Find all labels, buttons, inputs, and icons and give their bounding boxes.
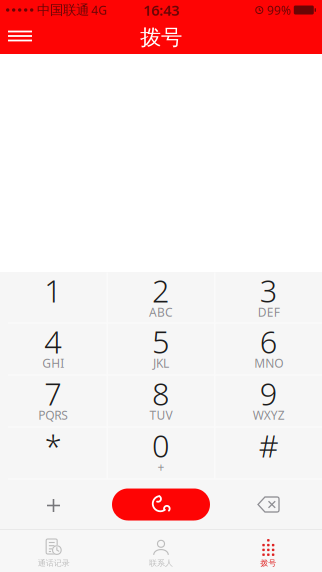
staticText: PQRS <box>38 407 68 423</box>
staticText: JKL <box>153 355 169 371</box>
button[interactable]: 0 <box>108 427 214 478</box>
button[interactable]: 拨号 <box>215 529 322 572</box>
staticText: 联系人 <box>149 558 173 568</box>
button[interactable]: 8 <box>108 375 214 426</box>
button[interactable]: 1 <box>0 272 107 322</box>
button[interactable]: 联系人 <box>107 529 215 572</box>
staticText: 16:43 <box>143 0 179 20</box>
staticText: 9 <box>260 373 278 414</box>
button[interactable]: 2 <box>108 272 214 322</box>
staticText: + <box>157 459 164 475</box>
button[interactable]: 通话记录 <box>0 529 107 572</box>
staticText: 0 <box>152 425 170 466</box>
button[interactable]: Delete <box>215 480 322 529</box>
staticText: 6 <box>260 321 278 362</box>
staticText: 4 <box>44 321 62 362</box>
button[interactable]: Add pause <box>0 480 107 529</box>
button[interactable]: # <box>215 427 322 478</box>
button[interactable]: 7 <box>0 375 107 426</box>
staticText: 4G <box>91 2 107 18</box>
staticText: 5 <box>152 321 170 362</box>
button[interactable]: 4 <box>0 323 107 374</box>
staticText: 1 <box>44 270 62 311</box>
button[interactable]: Call <box>107 480 215 529</box>
button[interactable]: 6 <box>215 323 322 374</box>
staticText: 中国联通 <box>37 2 89 18</box>
staticText: TUV <box>149 407 172 423</box>
staticText: 7 <box>44 373 62 414</box>
staticText: ABC <box>149 304 173 320</box>
staticText: 8 <box>152 373 170 414</box>
staticText: 拨号 <box>140 24 182 51</box>
staticText: 2 <box>152 270 170 311</box>
staticText: DEF <box>258 304 280 320</box>
staticText: 3 <box>260 270 278 311</box>
staticText: WXYZ <box>253 407 285 423</box>
staticText: MNO <box>254 355 283 371</box>
button[interactable]: 5 <box>108 323 214 374</box>
staticText: 99% <box>267 2 291 18</box>
button[interactable]: Menu <box>0 19 40 55</box>
staticText: * <box>45 425 62 466</box>
button[interactable]: 3 <box>215 272 322 322</box>
staticText: 通话记录 <box>38 558 70 568</box>
button[interactable]: 9 <box>215 375 322 426</box>
staticText: # <box>259 425 279 466</box>
staticText: GHI <box>42 355 64 371</box>
button[interactable]: * <box>0 427 107 478</box>
staticText: 拨号 <box>260 558 276 568</box>
